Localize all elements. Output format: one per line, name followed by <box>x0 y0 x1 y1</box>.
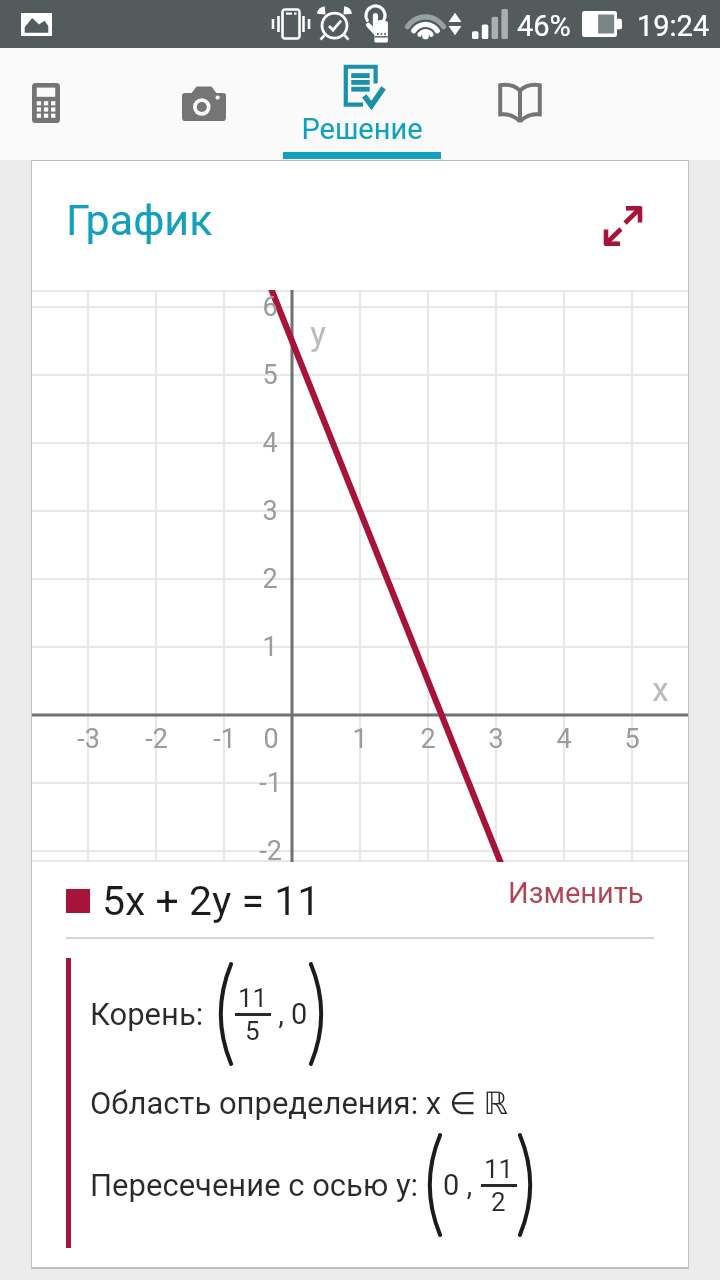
button[interactable]: Camera <box>125 48 283 160</box>
staticText: 2 <box>262 563 278 595</box>
staticText: 0 , <box>443 1168 480 1202</box>
staticText: 11 <box>238 983 268 1013</box>
staticText: 4 <box>556 723 572 755</box>
staticText: Изменить <box>508 876 644 910</box>
staticText: Пересечение с осью y: <box>90 1167 419 1203</box>
staticText: График <box>66 195 213 245</box>
staticText: -2 <box>259 835 282 867</box>
staticText: 19:24 <box>637 9 710 43</box>
staticText: , 0 <box>271 997 308 1031</box>
staticText: 5x + 2y = 11 <box>102 877 321 925</box>
staticText: Решение <box>301 112 423 146</box>
button[interactable]: Book <box>441 48 599 160</box>
staticText: 4 <box>262 427 278 459</box>
staticText: 3 <box>488 723 504 755</box>
staticText: -1 <box>259 767 282 799</box>
staticText: 2 <box>491 1187 506 1217</box>
staticText: 6 <box>262 291 278 323</box>
staticText: 5 <box>262 359 278 391</box>
staticText: 1 <box>352 723 368 755</box>
staticText: -2 <box>145 723 168 755</box>
staticText: x <box>652 670 669 709</box>
staticText: 5 <box>245 1016 260 1046</box>
button[interactable]: Calculator <box>0 48 125 160</box>
staticText: 2 <box>420 723 436 755</box>
button[interactable]: Expand <box>593 196 653 256</box>
button[interactable]: Решение <box>283 48 441 160</box>
staticText: -3 <box>77 723 100 755</box>
button[interactable]: 5x + 2y = 11 <box>62 871 321 931</box>
staticText: Область определения: x ∈ ℝ <box>90 1085 509 1121</box>
staticText: Корень: <box>90 996 204 1032</box>
staticText: 0 <box>263 723 279 755</box>
staticText: 11 <box>484 1154 514 1184</box>
staticText: -1 <box>213 723 236 755</box>
staticText: 3 <box>262 495 278 527</box>
staticText: y <box>310 314 326 353</box>
staticText: 46% <box>517 9 571 43</box>
staticText: 1 <box>262 631 278 663</box>
staticText: 5 <box>624 723 640 755</box>
button[interactable]: Изменить <box>496 864 656 922</box>
